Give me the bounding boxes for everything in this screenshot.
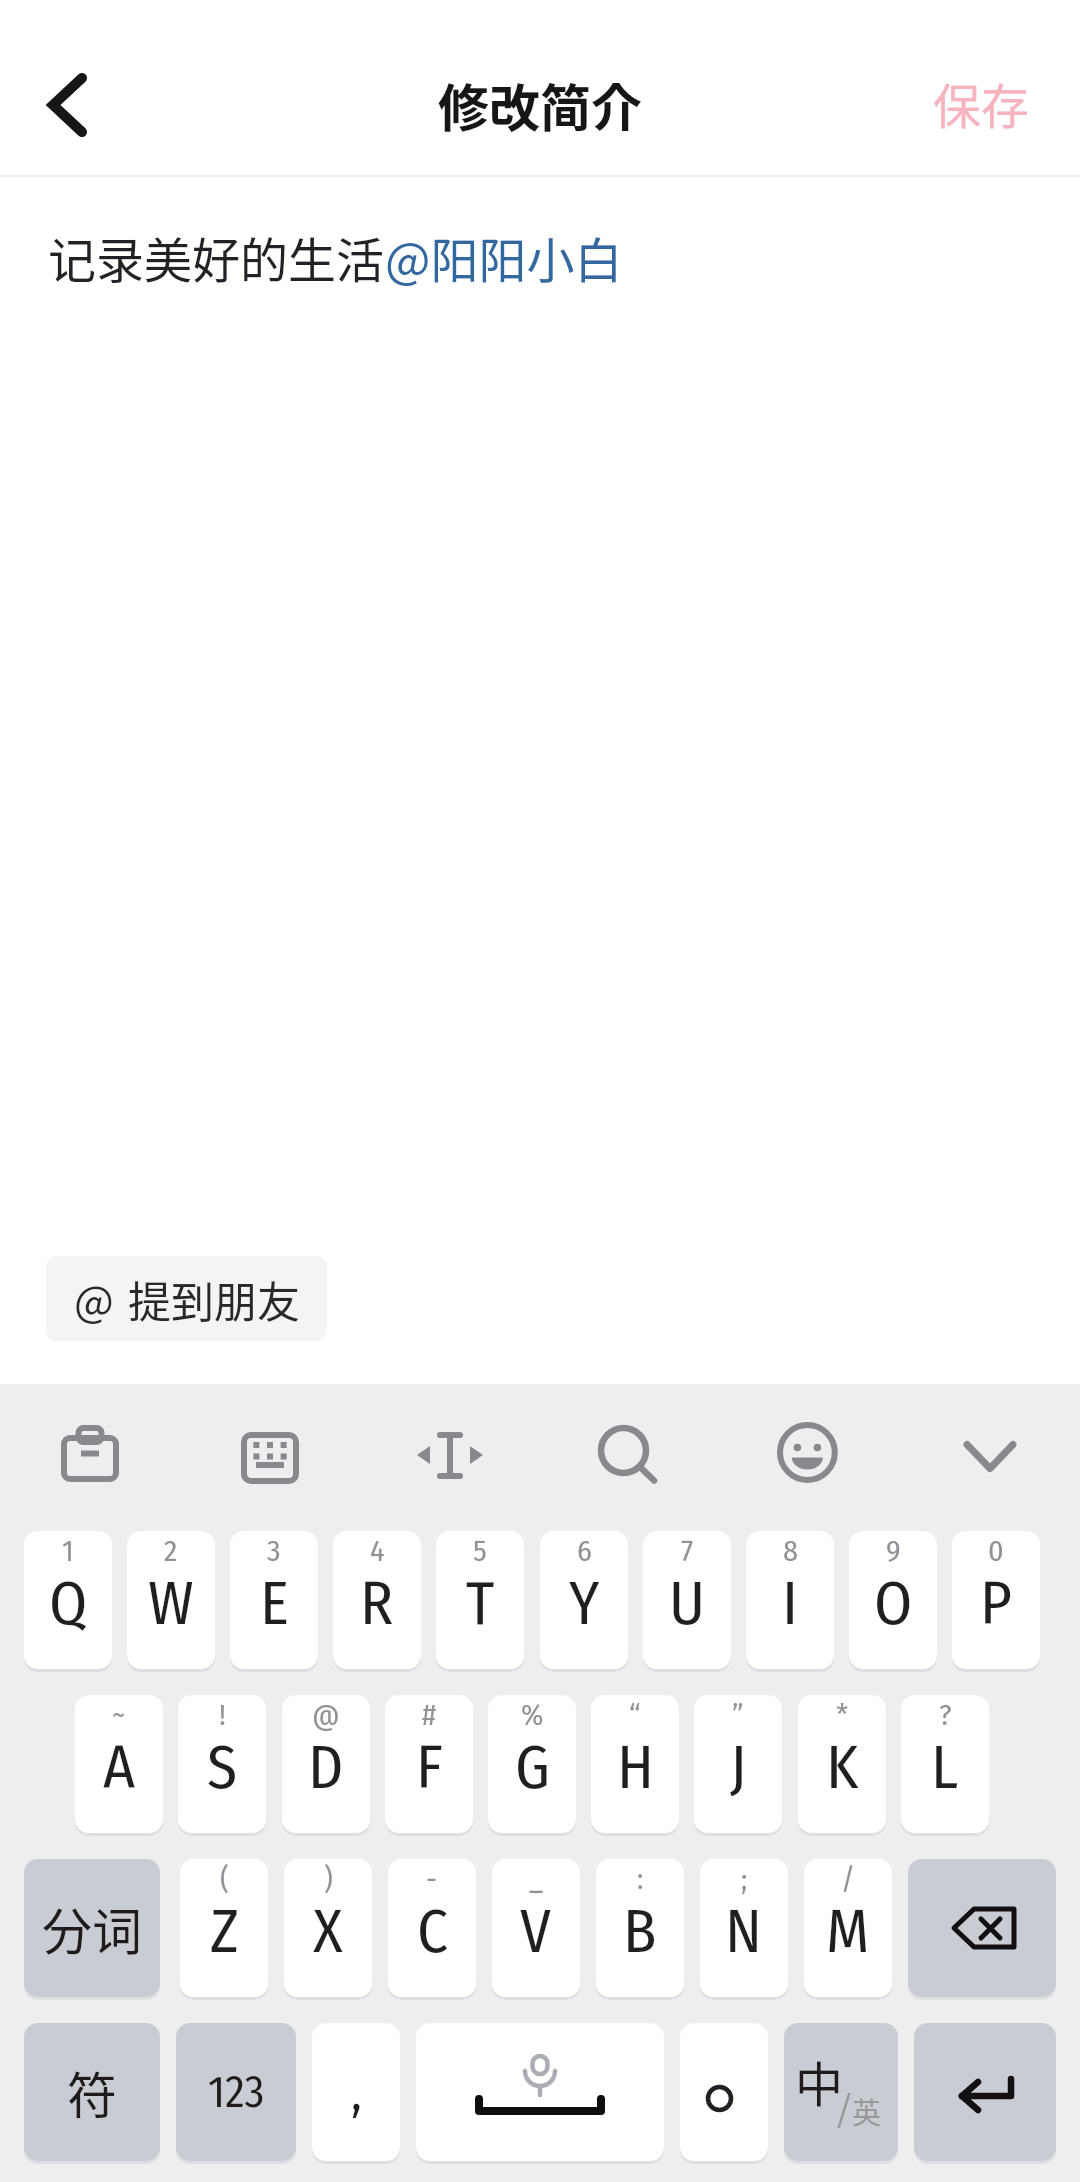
staticText: I [782,1567,798,1640]
button[interactable]: 8 [746,1531,834,1669]
button[interactable]: ? [901,1695,989,1833]
button[interactable]: : [596,1859,684,1997]
staticText: K [826,1731,859,1804]
staticText: Z [210,1895,239,1968]
staticText: J [730,1731,747,1804]
button[interactable] [180,1384,360,1531]
staticText: C [417,1895,448,1968]
staticText: 保存 [933,68,1030,138]
button[interactable]: 中 [784,2023,898,2161]
staticText: 9 [886,1533,901,1569]
staticText: 2 [164,1533,178,1569]
staticText: 5 [473,1533,487,1569]
staticText: 符 [67,2056,117,2128]
staticText: @ [312,1697,340,1733]
staticText: F [416,1731,443,1804]
staticText: : [637,1861,644,1897]
button[interactable] [360,1384,540,1531]
button[interactable]: , [312,2023,400,2161]
staticText: 提到朋友 [128,1268,300,1330]
button[interactable]: 123 [176,2023,296,2161]
button[interactable] [416,2023,664,2161]
staticText: - [426,1861,438,1897]
button[interactable] [900,1384,1080,1531]
button[interactable] [540,1384,720,1531]
staticText: Y [569,1567,600,1640]
staticText: M [826,1895,870,1968]
staticText: S [207,1731,238,1804]
button[interactable]: 2 [127,1531,215,1669]
button[interactable]: # [385,1695,473,1833]
staticText: 英 [852,2090,882,2132]
button[interactable]: ! [178,1695,266,1833]
staticText: 8 [783,1533,798,1569]
button[interactable] [914,2023,1056,2161]
staticText: ” [732,1697,744,1733]
button[interactable]: - [388,1859,476,1997]
staticText: D [308,1731,344,1804]
staticText: ~ [112,1697,126,1733]
button[interactable]: 6 [540,1531,628,1669]
staticText: U [669,1567,705,1640]
button[interactable]: ( [180,1859,268,1997]
staticText: E [260,1567,289,1640]
staticText: 0 [988,1533,1004,1569]
button[interactable]: ) [284,1859,372,1997]
staticText: % [521,1697,544,1733]
staticText: , [351,2061,362,2123]
button[interactable]: % [488,1695,576,1833]
staticText: H [617,1731,654,1804]
staticText: 7 [681,1533,694,1569]
button[interactable]: 保存 [933,68,1030,138]
button[interactable] [908,1859,1056,1997]
staticText: 4 [370,1533,385,1569]
staticText: ) [324,1861,333,1897]
button[interactable]: 4 [333,1531,421,1669]
staticText: 分词 [42,1892,142,1964]
staticText: @阳阳小白 [385,222,623,292]
button[interactable]: ” [694,1695,782,1833]
button[interactable]: 分词 [24,1859,160,1997]
staticText: # [422,1697,437,1733]
button[interactable] [680,2023,768,2161]
button[interactable]: / [804,1859,892,1997]
staticText: ( [220,1861,229,1897]
staticText: * [836,1697,849,1733]
staticText: @ [74,1268,114,1329]
button[interactable]: “ [591,1695,679,1833]
staticText: A [103,1731,136,1804]
button[interactable] [720,1384,900,1531]
staticText: 3 [267,1533,281,1569]
staticText: Q [49,1567,88,1640]
staticText: R [360,1567,394,1640]
button[interactable]: 3 [230,1531,318,1669]
button[interactable]: ; [700,1859,788,1997]
button[interactable] [0,1384,180,1531]
staticText: ? [939,1697,952,1733]
button[interactable]: _ [492,1859,580,1997]
button[interactable]: 1 [24,1531,112,1669]
staticText: 1 [62,1533,74,1569]
staticText: _ [529,1861,544,1897]
button[interactable]: 5 [436,1531,524,1669]
staticText: 6 [577,1533,592,1569]
button[interactable]: 符 [24,2023,160,2161]
staticText: V [520,1895,552,1968]
button[interactable]: 0 [952,1531,1040,1669]
button[interactable]: * [798,1695,886,1833]
staticText: P [980,1567,1012,1640]
button[interactable] [40,66,96,144]
staticText: “ [629,1697,641,1733]
staticText: G [515,1731,550,1804]
button[interactable]: ~ [75,1695,163,1833]
staticText: 修改简介 [438,68,643,142]
staticText: N [725,1895,763,1968]
staticText: ! [219,1697,226,1733]
button[interactable]: 9 [849,1531,937,1669]
staticText: O [874,1567,913,1640]
button[interactable]: 7 [643,1531,731,1669]
staticText: W [148,1567,194,1640]
button[interactable]: @ [46,1256,327,1341]
button[interactable]: @ [282,1695,370,1833]
staticText: L [931,1731,959,1804]
